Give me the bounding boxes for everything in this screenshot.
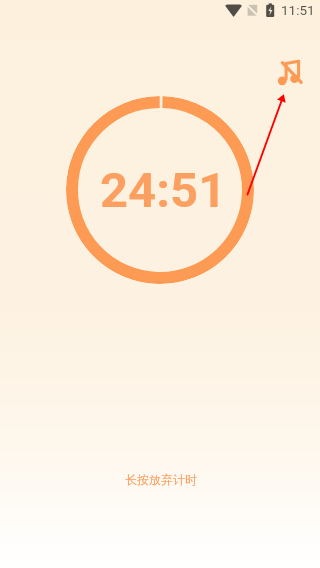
- staticText: 11:51: [281, 2, 315, 18]
- button[interactable]: 长按放弃计时: [1, 472, 320, 487]
- button[interactable]: Mute music: [276, 56, 306, 86]
- staticText: 长按放弃计时: [125, 472, 197, 487]
- button[interactable]: Pause timer: [66, 96, 254, 284]
- staticText: 24:51: [100, 162, 227, 219]
